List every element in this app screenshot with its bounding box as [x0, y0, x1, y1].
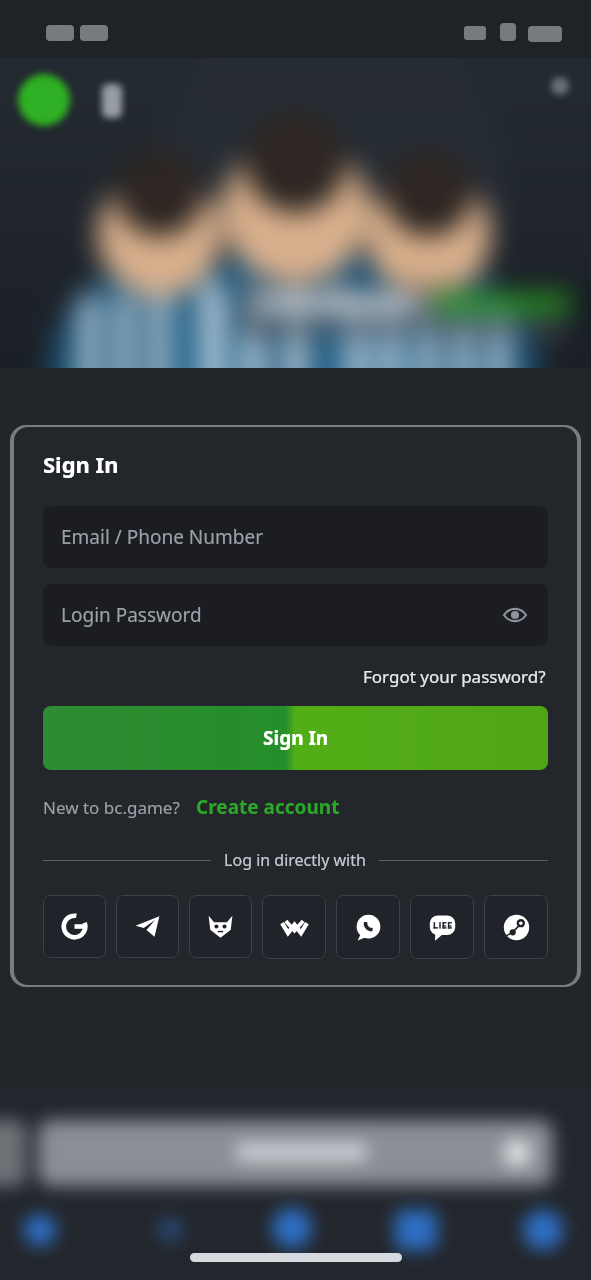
- staticText: Log in directly with: [224, 849, 366, 871]
- button[interactable]: Google: [43, 895, 106, 958]
- button[interactable]: LINE: [410, 895, 474, 959]
- button[interactable]: Telegram: [116, 895, 179, 958]
- staticText: Create account: [196, 794, 340, 820]
- staticText: Sign In: [263, 725, 329, 751]
- staticText: Sign In: [43, 449, 119, 479]
- button[interactable]: Sign In: [43, 706, 548, 770]
- button[interactable]: Steam: [484, 895, 548, 959]
- staticText: Email / Phone Number: [61, 524, 264, 550]
- staticText: Login Password: [61, 602, 202, 628]
- staticText: New to bc.game?: [43, 796, 180, 819]
- button[interactable]: Forgot your password?: [361, 663, 548, 690]
- staticText: Forgot your password?: [363, 665, 546, 688]
- button[interactable]: MetaMask: [189, 895, 252, 958]
- button[interactable]: Email / Phone Number: [43, 506, 548, 568]
- button[interactable]: Show password: [500, 600, 530, 630]
- button[interactable]: Create account: [194, 792, 342, 822]
- button[interactable]: Wallet: [262, 895, 326, 959]
- button[interactable]: WhatsApp: [336, 895, 400, 959]
- button[interactable]: Login Password: [43, 584, 548, 646]
